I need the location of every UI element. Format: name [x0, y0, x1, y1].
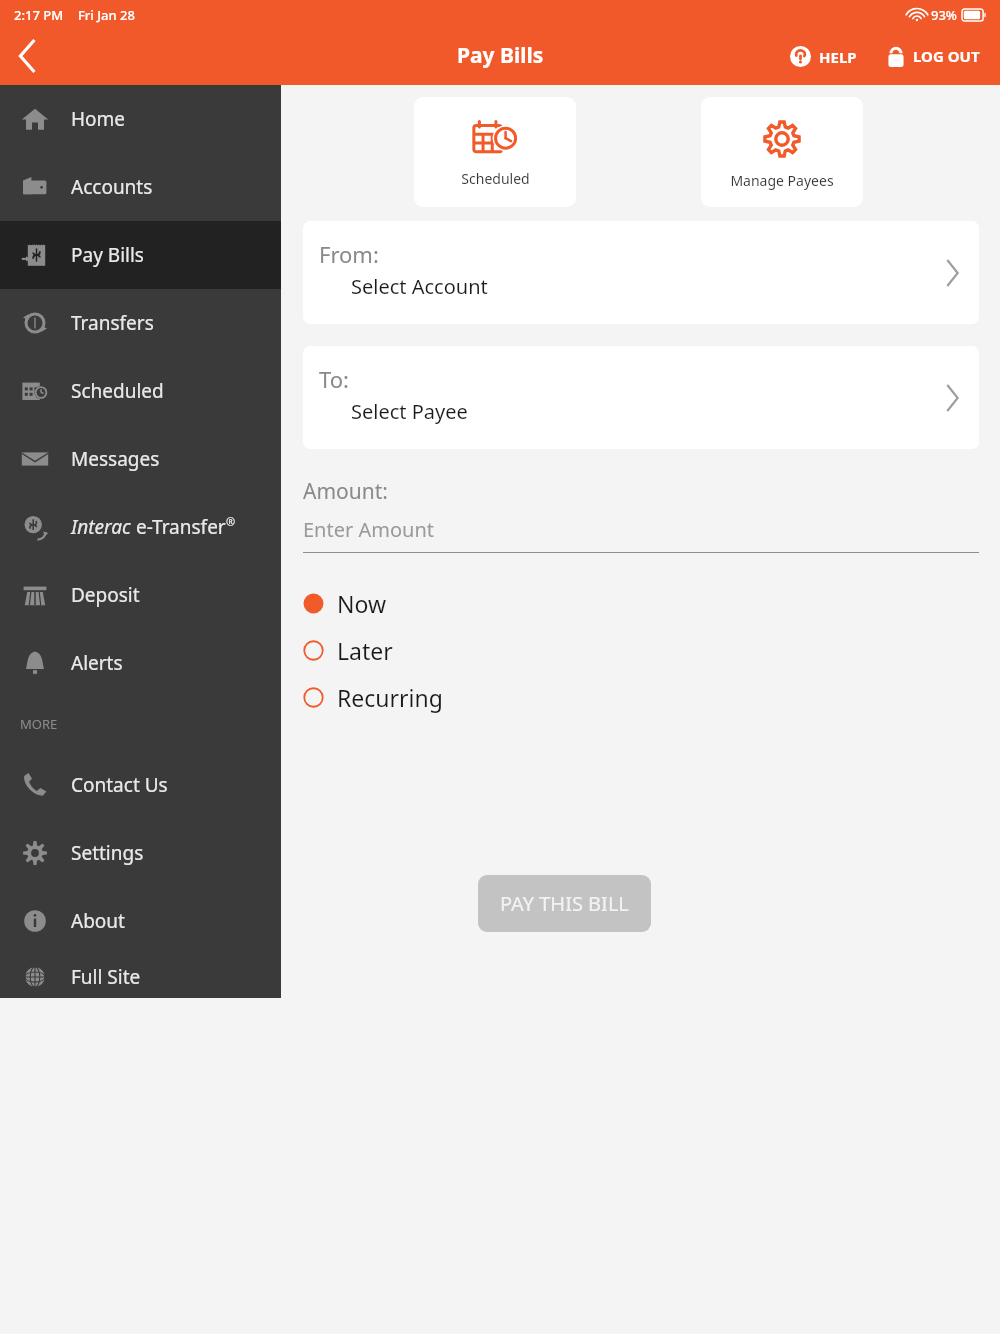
staticText: Scheduled: [71, 378, 164, 404]
button[interactable]: HELP: [784, 40, 863, 73]
button[interactable]: LOG OUT: [881, 39, 986, 73]
staticText: Interac: [71, 514, 131, 540]
staticText: Pay Bills: [71, 242, 144, 268]
button[interactable]: Pay Bills: [0, 221, 281, 289]
staticText: Accounts: [71, 174, 153, 200]
staticText: To:: [319, 364, 349, 394]
staticText: HELP: [819, 47, 857, 67]
staticText: Settings: [71, 840, 144, 866]
staticText: Amount:: [303, 477, 388, 506]
button[interactable]: About: [0, 887, 281, 955]
staticText: Fri Jan 28: [78, 6, 135, 24]
staticText: Contact Us: [71, 772, 168, 798]
button[interactable]: Accounts: [0, 153, 281, 221]
staticText: Messages: [71, 446, 160, 472]
button[interactable]: PAY THIS BILL: [478, 875, 651, 932]
button[interactable]: To:: [303, 346, 979, 449]
staticText: MORE: [20, 715, 58, 733]
staticText: Manage Payees: [730, 171, 834, 190]
button[interactable]: Messages: [0, 425, 281, 493]
staticText: Scheduled: [461, 169, 530, 188]
button[interactable]: Enter Amount: [303, 516, 979, 553]
staticText: Later: [337, 635, 393, 666]
staticText: LOG OUT: [913, 46, 980, 66]
staticText: 93%: [931, 6, 957, 24]
button[interactable]: Scheduled: [414, 97, 576, 207]
staticText: Pay Bills: [457, 41, 544, 70]
staticText: Deposit: [71, 582, 140, 608]
staticText: e-Transfer: [131, 514, 226, 540]
staticText: From:: [319, 239, 379, 269]
button[interactable]: Full Site: [0, 955, 281, 998]
button[interactable]: Settings: [0, 819, 281, 887]
staticText: ®: [226, 514, 236, 529]
button[interactable]: Transfers: [0, 289, 281, 357]
button[interactable]: Alerts: [0, 629, 281, 697]
staticText: Transfers: [71, 310, 154, 336]
staticText: Alerts: [71, 650, 123, 676]
staticText: Recurring: [337, 682, 443, 713]
staticText: Home: [71, 106, 126, 132]
button[interactable]: Scheduled: [0, 357, 281, 425]
staticText: PAY THIS BILL: [500, 890, 629, 917]
staticText: Full Site: [71, 964, 141, 990]
button[interactable]: Back: [0, 28, 56, 84]
button[interactable]: Contact Us: [0, 751, 281, 819]
button[interactable]: Later: [281, 627, 1000, 674]
staticText: About: [71, 908, 125, 934]
button[interactable]: Deposit: [0, 561, 281, 629]
staticText: Select Account: [351, 273, 488, 300]
button[interactable]: From:: [303, 221, 979, 324]
staticText: Enter Amount: [303, 516, 434, 543]
button[interactable]: Manage Payees: [701, 97, 863, 207]
staticText: 2:17 PM: [14, 6, 64, 24]
button[interactable]: Recurring: [281, 674, 1000, 721]
staticText: Now: [337, 588, 387, 619]
button[interactable]: Home: [0, 85, 281, 153]
button[interactable]: Now: [281, 580, 1000, 627]
staticText: Select Payee: [351, 398, 468, 425]
button[interactable]: Interac: [0, 493, 281, 561]
